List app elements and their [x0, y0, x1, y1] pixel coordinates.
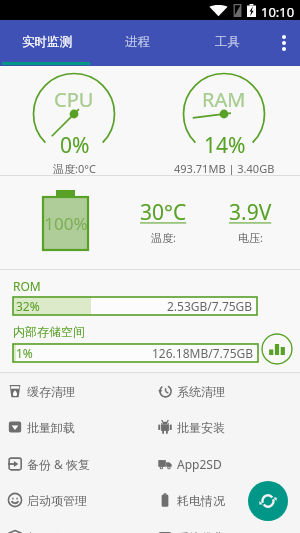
button[interactable]: 实时监测	[0, 20, 90, 66]
button[interactable]: 耗电情况	[150, 482, 300, 518]
staticText: 14%	[204, 131, 246, 160]
button[interactable]: 权限管理	[0, 519, 150, 533]
staticText: 电压:	[238, 230, 263, 245]
staticText: 2.53GB/7.75GB	[167, 298, 253, 314]
staticText: 温度:	[151, 230, 176, 245]
staticText: 3.9V	[229, 198, 272, 227]
staticText: 系统优化	[177, 530, 225, 533]
staticText: 32%	[16, 298, 40, 314]
button[interactable]: 进程	[90, 20, 180, 66]
staticText: 内部存储空间	[13, 324, 85, 339]
staticText: App2SD	[177, 456, 222, 472]
staticText: 进程	[125, 34, 150, 50]
staticText: RAM	[202, 86, 246, 113]
button[interactable]: 批量卸载	[0, 409, 150, 445]
button[interactable]: App2SD	[150, 446, 300, 482]
staticText: 100%	[42, 212, 90, 235]
button[interactable]: Storage analysis	[261, 333, 293, 365]
button[interactable]: 系统清理	[150, 373, 300, 409]
staticText: 启动项管理	[27, 493, 87, 508]
button[interactable]: 备份 & 恢复	[0, 446, 150, 482]
button[interactable]: 工具	[180, 20, 270, 66]
staticText: ROM	[13, 278, 41, 294]
staticText: 温度:0°C	[53, 161, 96, 176]
staticText: 实时监测	[22, 34, 72, 50]
staticText: 工具	[215, 34, 240, 50]
staticText: 126.18MB/7.75GB	[152, 345, 254, 361]
staticText: 备份 & 恢复	[27, 456, 91, 472]
staticText: 10:10	[261, 3, 295, 21]
staticText: 493.71MB | 3.40GB	[174, 161, 275, 176]
staticText: 批量卸载	[27, 420, 75, 435]
button[interactable]: Refresh	[248, 481, 288, 521]
staticText: 0%	[60, 131, 90, 160]
button[interactable]: 缓存清理	[0, 373, 150, 409]
staticText: 权限管理	[27, 530, 75, 533]
staticText: 耗电情况	[177, 493, 225, 508]
button[interactable]: 启动项管理	[0, 482, 150, 518]
staticText: 批量安装	[177, 420, 225, 435]
staticText: 缓存清理	[27, 384, 75, 399]
staticText: CPU	[54, 86, 94, 113]
staticText: 30°C	[140, 198, 187, 227]
button[interactable]: 批量安装	[150, 409, 300, 445]
button[interactable]: More options	[268, 20, 300, 66]
staticText: 1%	[16, 345, 33, 361]
staticText: 系统清理	[177, 384, 225, 399]
button[interactable]: 系统优化	[150, 519, 300, 533]
